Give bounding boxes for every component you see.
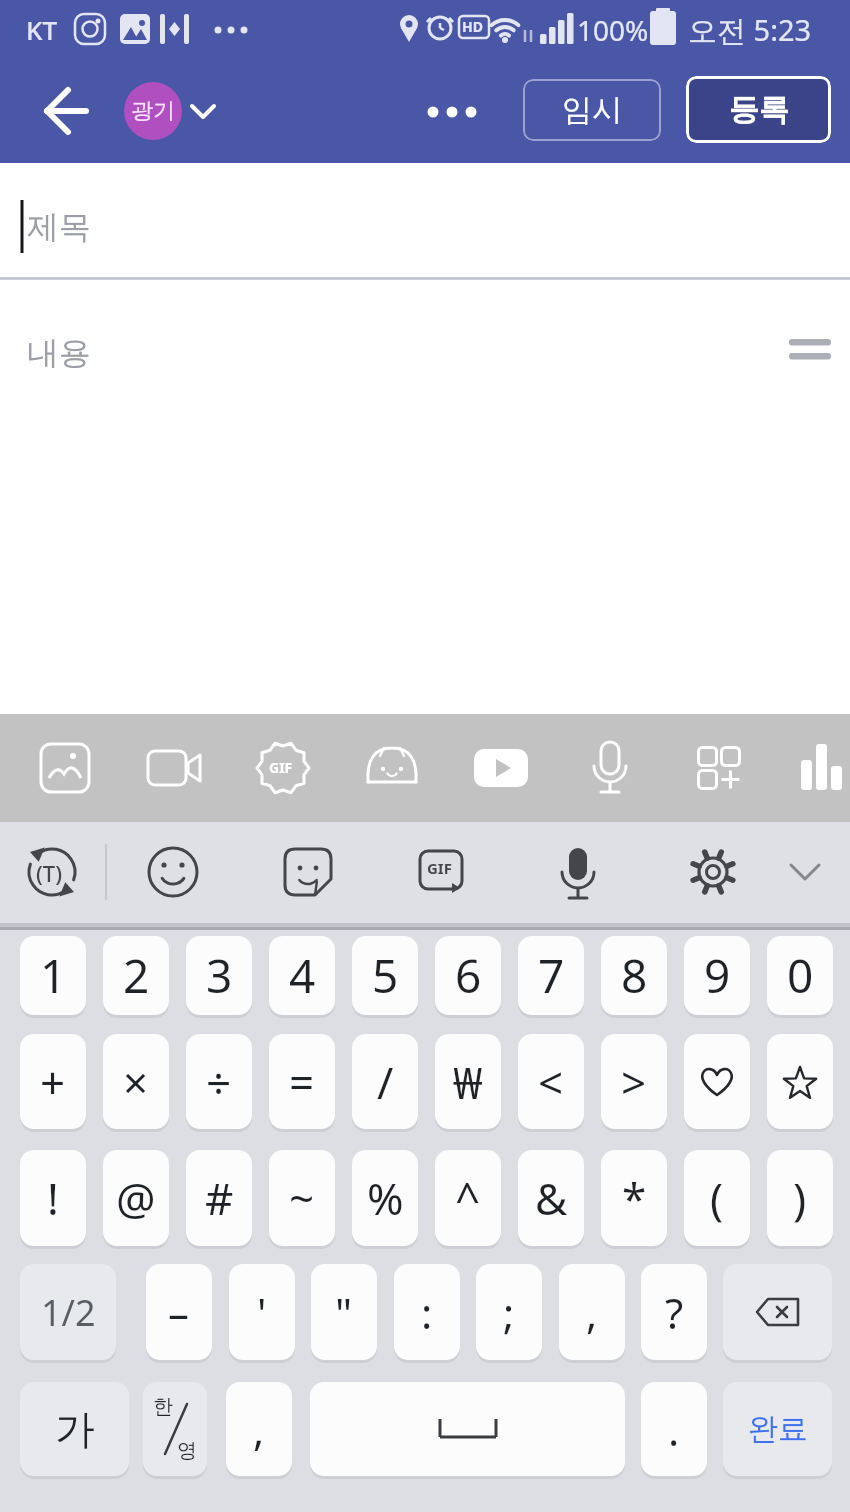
button[interactable]: 1/2: [20, 1264, 116, 1360]
button[interactable]: [767, 1034, 833, 1129]
button[interactable]: [638, 714, 744, 822]
button[interactable]: (: [684, 1150, 750, 1246]
button[interactable]: [744, 714, 850, 822]
staticText: +: [40, 1052, 66, 1112]
button[interactable]: 한: [143, 1382, 207, 1476]
button[interactable]: %: [352, 1150, 418, 1246]
button[interactable]: [108, 822, 239, 930]
button[interactable]: /: [352, 1034, 418, 1129]
staticText: 완료: [748, 1410, 808, 1448]
button[interactable]: 가: [20, 1382, 129, 1476]
button[interactable]: ×: [103, 1034, 169, 1129]
staticText: ?: [665, 1284, 684, 1341]
staticText: &: [535, 1168, 568, 1228]
button[interactable]: @: [103, 1150, 169, 1246]
button[interactable]: ~: [269, 1150, 335, 1246]
button[interactable]: [239, 822, 370, 930]
button[interactable]: ÷: [186, 1034, 252, 1129]
button[interactable]: [684, 1034, 750, 1129]
button[interactable]: [107, 714, 214, 822]
button[interactable]: [723, 1264, 832, 1360]
staticText: 100%: [577, 11, 649, 49]
button[interactable]: [320, 714, 426, 822]
button[interactable]: [425, 97, 485, 127]
staticText: 4: [289, 944, 316, 1007]
staticText: 5: [372, 944, 399, 1007]
button[interactable]: ,: [226, 1382, 292, 1476]
staticText: ^: [455, 1168, 481, 1228]
staticText: 0: [787, 944, 814, 1007]
button[interactable]: ^: [435, 1150, 501, 1246]
staticText: <: [538, 1052, 564, 1112]
staticText: %: [367, 1168, 404, 1228]
button[interactable]: [0, 822, 108, 930]
staticText: 오전 5:23: [688, 10, 812, 50]
staticText: 영: [177, 1438, 197, 1463]
button[interactable]: ": [311, 1264, 377, 1360]
button[interactable]: [630, 822, 760, 930]
staticText: 등록: [729, 91, 789, 129]
button[interactable]: 5: [352, 936, 418, 1015]
button[interactable]: 0: [767, 936, 833, 1015]
staticText: ÷: [206, 1052, 232, 1112]
button[interactable]: ': [229, 1264, 295, 1360]
button[interactable]: 임시: [523, 79, 661, 141]
button[interactable]: *: [601, 1150, 667, 1246]
button[interactable]: !: [20, 1150, 86, 1246]
button[interactable]: ;: [476, 1264, 542, 1360]
button[interactable]: ?: [641, 1264, 707, 1360]
staticText: /: [377, 1052, 394, 1112]
button[interactable]: [500, 822, 630, 930]
button[interactable]: [370, 822, 500, 930]
button[interactable]: [0, 714, 107, 822]
staticText: 6: [455, 944, 482, 1007]
button[interactable]: 광기: [124, 82, 216, 140]
button[interactable]: 2: [103, 936, 169, 1015]
button[interactable]: ,: [559, 1264, 625, 1360]
button[interactable]: 8: [601, 936, 667, 1015]
button[interactable]: >: [601, 1034, 667, 1129]
staticText: 8: [621, 944, 648, 1007]
staticText: ": [335, 1284, 353, 1341]
button[interactable]: [426, 714, 532, 822]
staticText: ×: [123, 1052, 149, 1112]
button[interactable]: ): [767, 1150, 833, 1246]
button[interactable]: 7: [518, 936, 584, 1015]
staticText: 2: [123, 944, 150, 1007]
staticText: ): [793, 1168, 807, 1228]
button[interactable]: [310, 1382, 625, 1476]
button[interactable]: –: [146, 1264, 212, 1360]
staticText: KT: [26, 12, 58, 47]
button[interactable]: [532, 714, 638, 822]
staticText: 3: [206, 944, 233, 1007]
button[interactable]: 9: [684, 936, 750, 1015]
button[interactable]: 제목: [0, 163, 850, 280]
staticText: =: [289, 1052, 315, 1112]
button[interactable]: :: [394, 1264, 460, 1360]
button[interactable]: 완료: [723, 1382, 832, 1476]
staticText: ₩: [453, 1052, 483, 1112]
button[interactable]: 4: [269, 936, 335, 1015]
button[interactable]: [760, 822, 850, 930]
button[interactable]: 1: [20, 936, 86, 1015]
button[interactable]: &: [518, 1150, 584, 1246]
staticText: *: [622, 1168, 647, 1228]
button[interactable]: .: [641, 1382, 707, 1476]
button[interactable]: #: [186, 1150, 252, 1246]
button[interactable]: 3: [186, 936, 252, 1015]
staticText: @: [116, 1168, 156, 1228]
staticText: !: [47, 1168, 59, 1228]
staticText: GIF: [269, 758, 293, 777]
button[interactable]: =: [269, 1034, 335, 1129]
button[interactable]: 6: [435, 936, 501, 1015]
staticText: ,: [586, 1284, 598, 1341]
button[interactable]: +: [20, 1034, 86, 1129]
button[interactable]: 등록: [686, 76, 831, 143]
button[interactable]: <: [518, 1034, 584, 1129]
staticText: 1/2: [41, 1288, 96, 1337]
button[interactable]: [214, 714, 320, 822]
button[interactable]: [30, 82, 86, 138]
staticText: 7: [538, 944, 565, 1007]
button[interactable]: 내용: [0, 280, 850, 714]
button[interactable]: ₩: [435, 1034, 501, 1129]
